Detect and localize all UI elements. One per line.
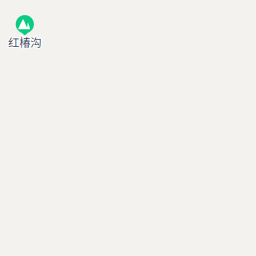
staticText: 红椿沟 — [7, 33, 40, 49]
staticText: 红椿沟 — [7, 34, 40, 51]
staticText: 红椿沟 — [9, 34, 42, 51]
button[interactable]: 红椿沟 — [8, 15, 41, 52]
staticText: 红椿沟 — [7, 33, 40, 50]
staticText: 红椿沟 — [9, 33, 42, 49]
staticText: 红椿沟 — [8, 32, 41, 49]
staticText: 红椿沟 — [8, 35, 41, 51]
staticText: 红椿沟 — [8, 33, 41, 50]
staticText: 红椿沟 — [9, 33, 42, 50]
